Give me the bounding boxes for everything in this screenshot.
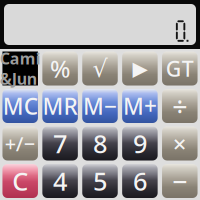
staticText: ▶ <box>132 57 147 80</box>
button[interactable]: 5 <box>82 164 118 198</box>
button[interactable]: 8 <box>82 126 118 160</box>
staticText: M+ <box>123 91 157 121</box>
staticText: 5 <box>93 164 107 198</box>
button[interactable]: 7 <box>42 126 78 160</box>
staticText: 7 <box>53 127 67 160</box>
staticText: ÷ <box>172 88 187 124</box>
button[interactable]: MC <box>2 89 38 123</box>
staticText: GT <box>166 54 194 83</box>
button[interactable]: 4 <box>42 164 78 198</box>
staticText: 6 <box>133 164 147 198</box>
staticText: M− <box>83 91 117 121</box>
staticText: MC <box>3 91 38 121</box>
button[interactable]: ▶ <box>122 51 158 85</box>
button[interactable]: × <box>162 126 198 160</box>
button[interactable]: M− <box>82 89 118 123</box>
button[interactable]: − <box>162 164 198 198</box>
staticText: √ <box>92 55 107 82</box>
button[interactable]: √ <box>82 51 118 85</box>
staticText: 4 <box>53 164 67 198</box>
button[interactable]: 6 <box>122 164 158 198</box>
button[interactable]: +/− <box>2 126 38 160</box>
button[interactable]: GT <box>162 51 198 85</box>
button[interactable]: M+ <box>122 89 158 123</box>
staticText: +/− <box>5 130 36 157</box>
button[interactable]: 9 <box>122 126 158 160</box>
staticText: Cami <box>0 48 41 69</box>
staticText: 9 <box>133 127 147 160</box>
staticText: MR <box>43 91 78 121</box>
staticText: % <box>50 53 70 84</box>
staticText: × <box>173 128 187 159</box>
staticText: − <box>172 163 187 199</box>
staticText: 8 <box>93 127 107 160</box>
staticText: &Jun <box>0 68 37 89</box>
staticText: C <box>12 164 28 198</box>
button[interactable]: C <box>2 164 38 198</box>
button[interactable]: ÷ <box>162 89 198 123</box>
button[interactable]: % <box>42 51 78 85</box>
button[interactable]: MR <box>42 89 78 123</box>
